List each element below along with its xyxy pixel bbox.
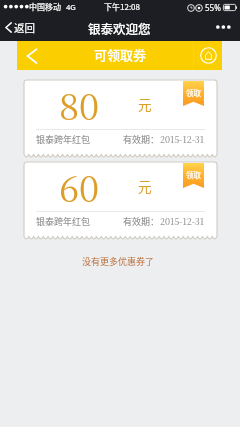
staticText: 中国移动 [29,1,61,13]
staticText: 有效期： [123,215,160,228]
button[interactable]: 返回 [4,20,35,35]
staticText: 没有更多优惠券了 [0,255,238,268]
staticText: 元 [138,94,152,114]
staticText: 银泰跨年红包 [36,133,91,146]
button[interactable]: Home [199,46,218,65]
button[interactable]: 领取 [183,163,204,188]
staticText: 2015-12-31 [160,215,205,228]
staticText: 有效期： [123,133,160,146]
staticText: 55% [205,2,221,13]
staticText: 60 [59,161,100,210]
button[interactable]: Back [25,47,43,65]
staticText: 元 [138,176,152,196]
staticText: 2015-12-31 [160,133,205,146]
staticText: 银泰欢迎您 [88,19,151,37]
staticText: 80 [59,79,100,128]
staticText: 下午12:08 [104,1,140,13]
button[interactable]: Back [17,41,222,70]
staticText: 可领取券 [94,45,147,64]
staticText: 银泰跨年红包 [36,215,91,228]
staticText: 4G [66,2,76,12]
staticText: 返回 [14,20,35,35]
staticText: 领取 [186,169,201,180]
button[interactable]: More options [212,17,236,37]
button[interactable]: 领取 [183,81,204,106]
staticText: 领取 [186,87,201,98]
